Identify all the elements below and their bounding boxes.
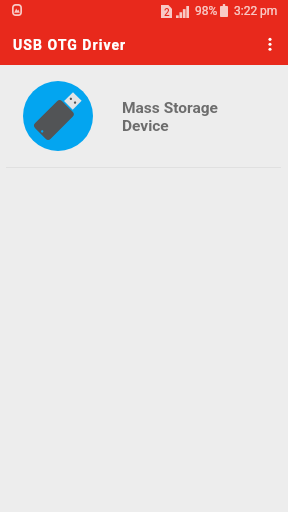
button[interactable]: Mass Storage Device	[0, 65, 288, 167]
staticText: 2	[164, 7, 170, 19]
staticText: 98%	[195, 4, 218, 18]
staticText: USB OTG Driver	[13, 37, 127, 53]
button[interactable]: More options	[248, 25, 288, 65]
staticText: 3:22 pm	[234, 4, 278, 18]
staticText: Mass Storage Device	[122, 99, 218, 135]
